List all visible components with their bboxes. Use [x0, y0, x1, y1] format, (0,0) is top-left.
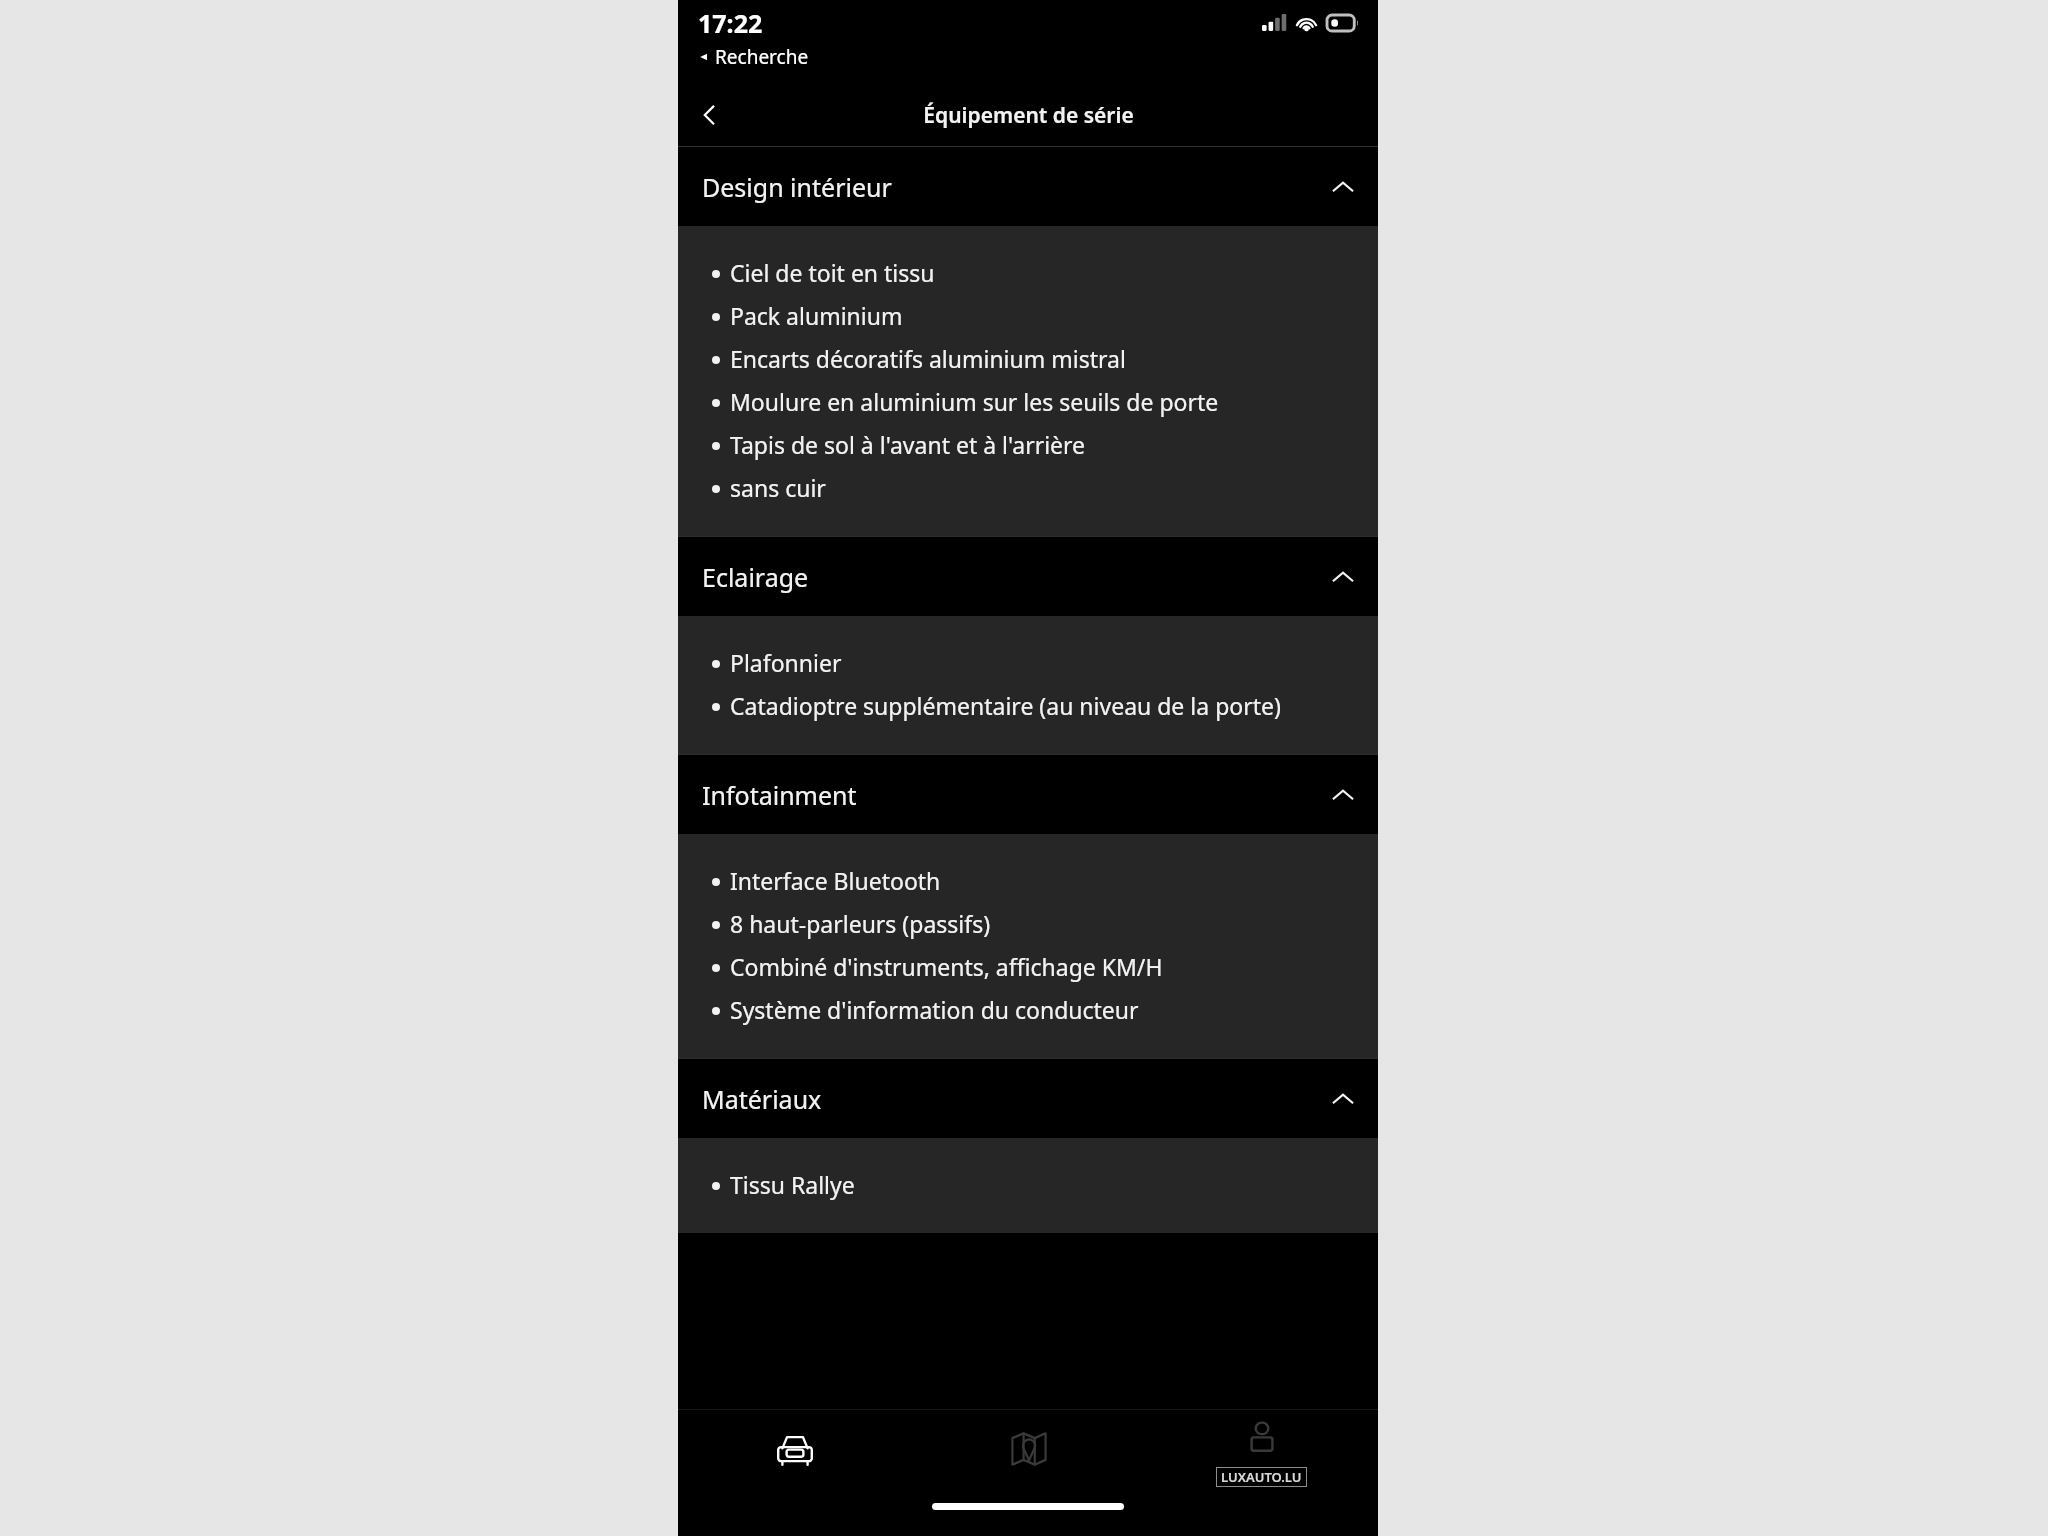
staticText: Recherche — [715, 44, 809, 70]
staticText: Moulure en aluminium sur les seuils de p… — [730, 386, 1219, 417]
staticText: Interface Bluetooth — [730, 865, 941, 896]
button[interactable]: Profil — [1235, 1411, 1289, 1465]
button[interactable]: Retour — [686, 91, 734, 139]
button[interactable]: Véhicule — [765, 1419, 825, 1479]
staticText: Matériaux — [702, 1082, 822, 1116]
staticText: Pack aluminium — [730, 300, 903, 331]
staticText: 8 haut-parleurs (passifs) — [730, 908, 991, 939]
button[interactable]: Carte — [999, 1419, 1059, 1479]
staticText: Équipement de série — [923, 101, 1134, 130]
staticText: Système d'information du conducteur — [730, 994, 1139, 1025]
staticText: Combiné d'instruments, affichage KM/H — [730, 951, 1163, 982]
staticText: 17:22 — [698, 6, 763, 40]
staticText: Encarts décoratifs aluminium mistral — [730, 343, 1126, 374]
button[interactable]: Infotainment — [678, 755, 1378, 834]
staticText: sans cuir — [730, 472, 826, 503]
button[interactable]: Design intérieur — [678, 147, 1378, 226]
staticText: Design intérieur — [702, 170, 892, 204]
staticText: Catadioptre supplémentaire (au niveau de… — [730, 690, 1281, 721]
staticText: Ciel de toit en tissu — [730, 257, 935, 288]
button[interactable]: Matériaux — [678, 1059, 1378, 1138]
staticText: Eclairage — [702, 560, 809, 594]
button[interactable]: Eclairage — [678, 537, 1378, 616]
staticText: Plafonnier — [730, 647, 842, 678]
staticText: Infotainment — [702, 778, 857, 812]
staticText: Tissu Rallye — [730, 1169, 855, 1200]
staticText: LUXAUTO.LU — [1221, 1468, 1302, 1486]
staticText: Tapis de sol à l'avant et à l'arrière — [730, 429, 1086, 460]
